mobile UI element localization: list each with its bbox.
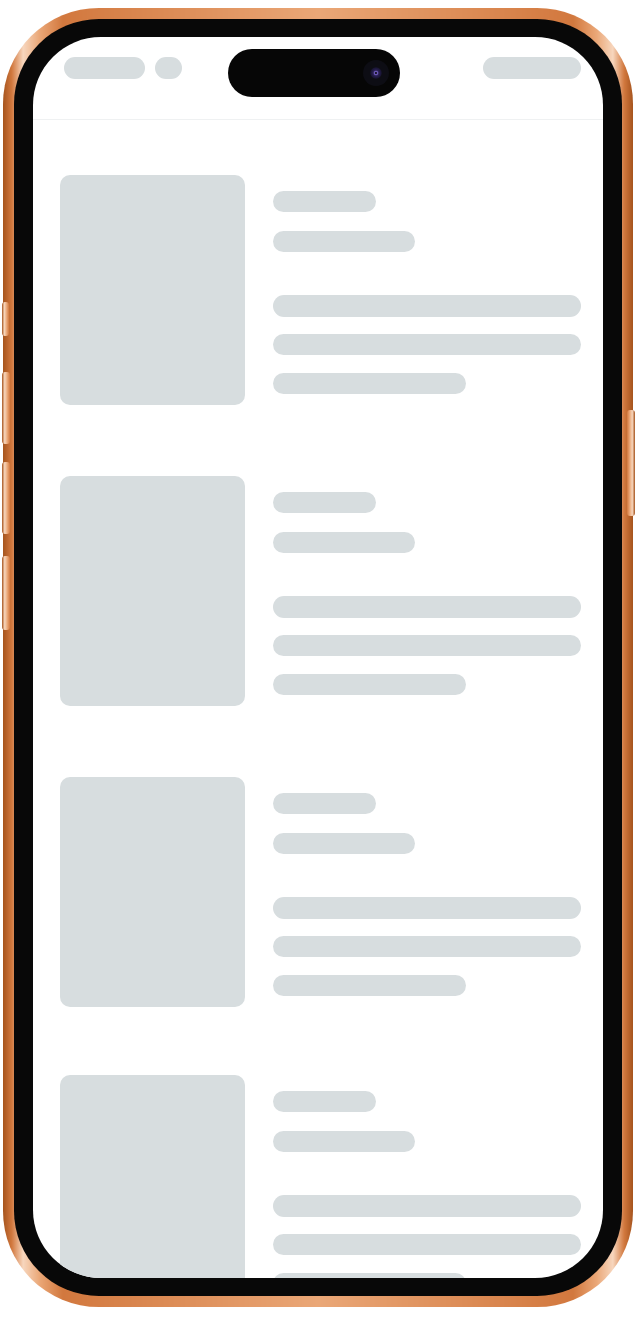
- button[interactable]: Volume up: [2, 372, 10, 444]
- button[interactable]: Loading item: [60, 476, 581, 707]
- button[interactable]: Volume: [2, 556, 10, 630]
- button[interactable]: Volume down: [2, 462, 10, 534]
- button[interactable]: Loading item: [60, 777, 581, 1008]
- button[interactable]: Loading item: [60, 175, 581, 406]
- button[interactable]: Silent switch: [2, 302, 9, 336]
- button[interactable]: Loading item: [60, 1075, 581, 1278]
- other: Dynamic Island: [228, 49, 400, 97]
- button[interactable]: Power: [627, 410, 635, 516]
